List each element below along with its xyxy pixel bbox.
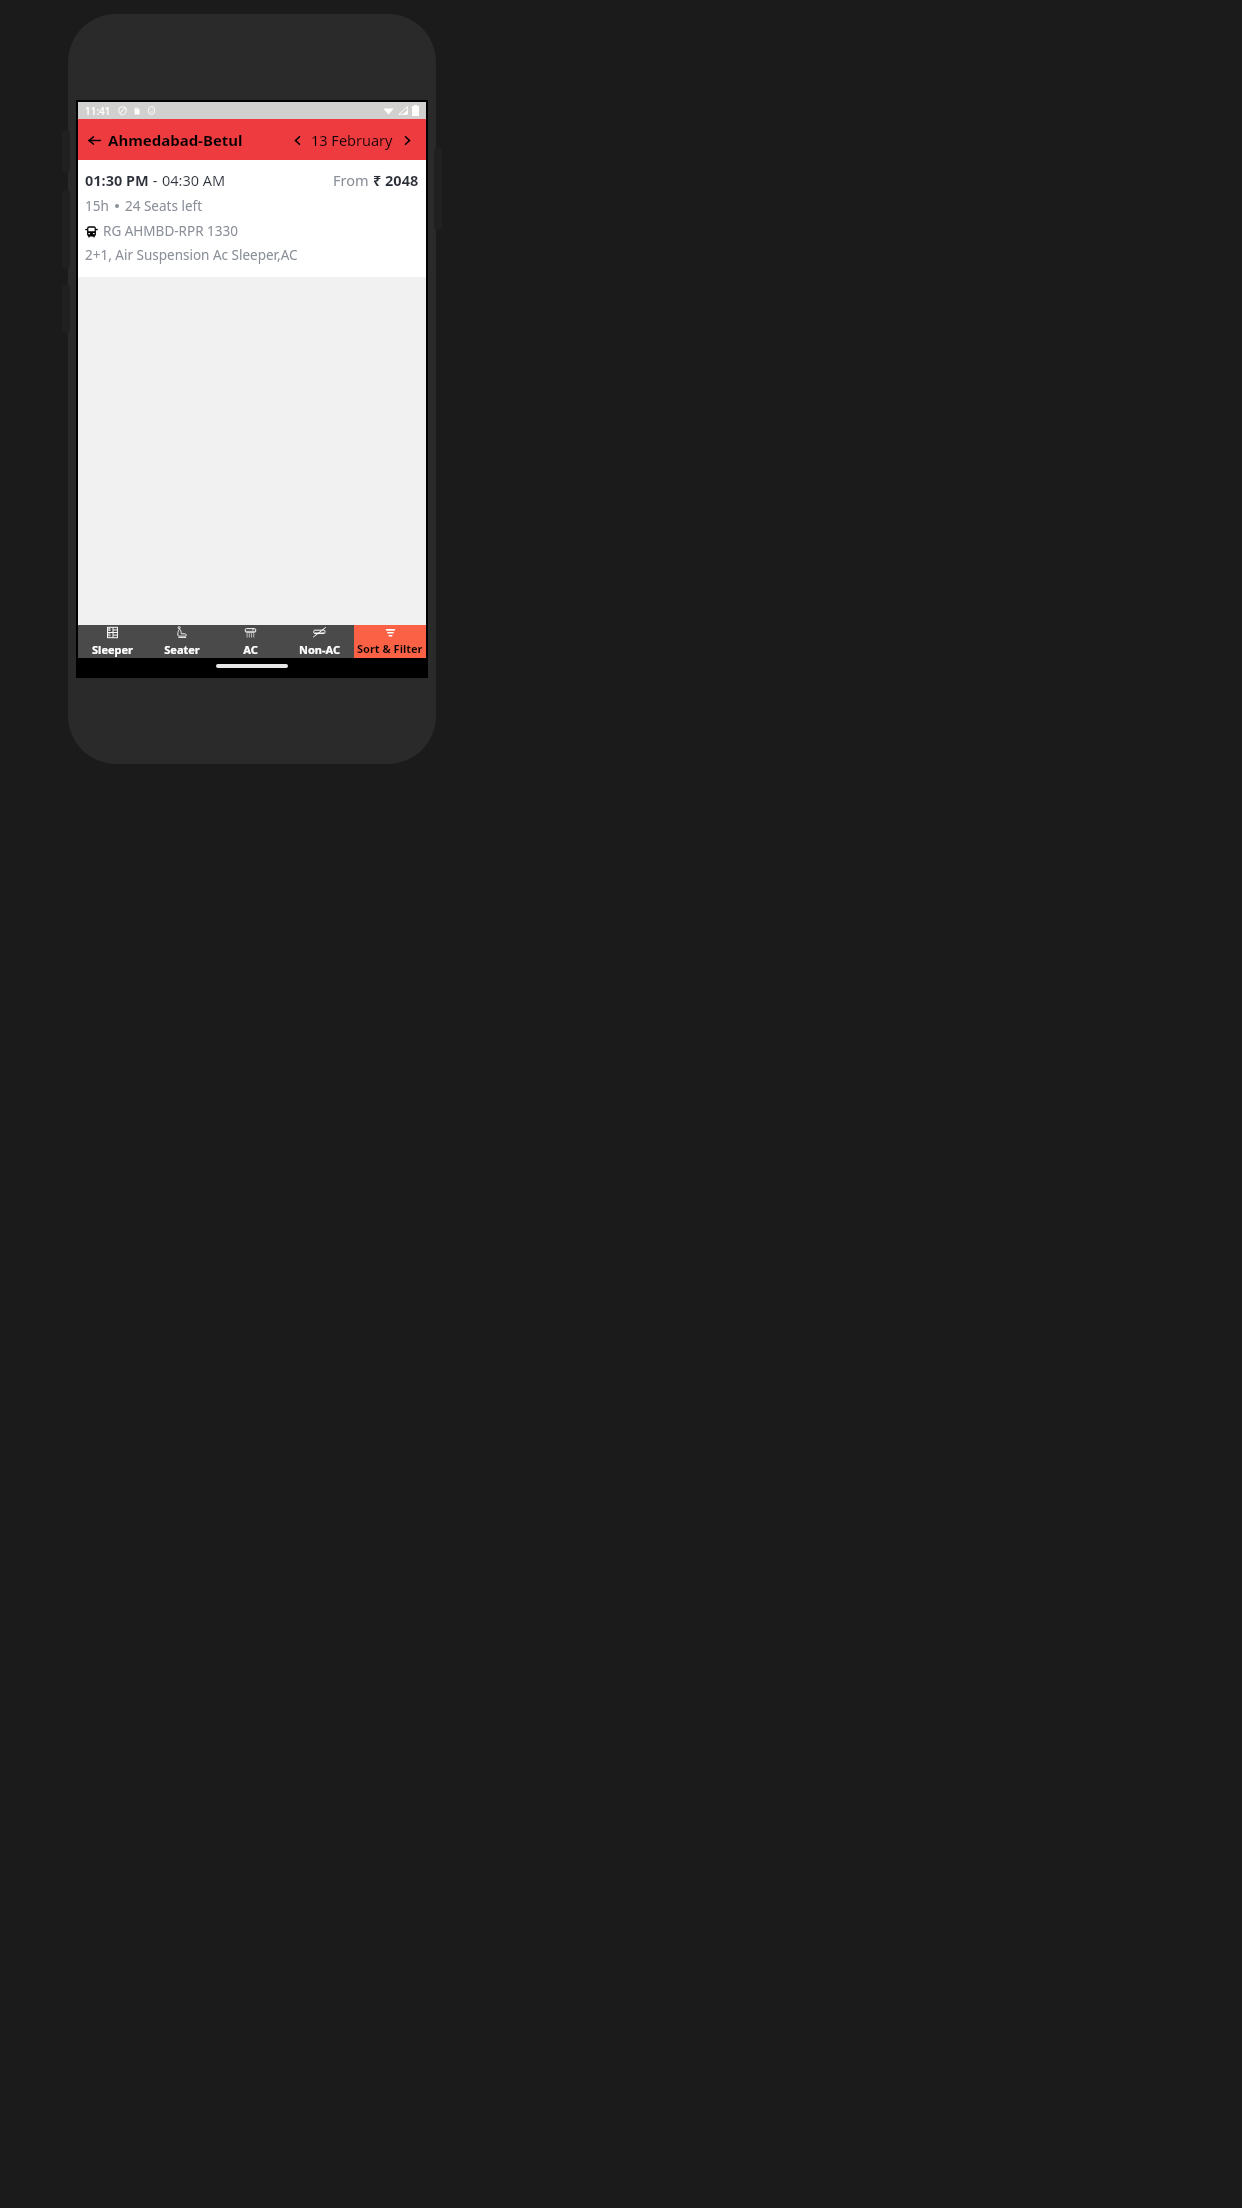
staticText: 04:30 AM bbox=[162, 170, 226, 190]
staticText: 24 Seats left bbox=[125, 197, 203, 215]
staticText: Non-AC bbox=[299, 642, 340, 657]
button[interactable]: Non-AC bbox=[285, 625, 354, 658]
staticText: RG AHMBD-RPR 1330 bbox=[103, 222, 238, 240]
other: Back bbox=[88, 134, 101, 147]
staticText: Sort & Filter bbox=[357, 641, 423, 656]
staticText: - bbox=[149, 170, 162, 190]
button[interactable]: Sleeper bbox=[78, 625, 147, 658]
staticText: 15h bbox=[85, 197, 109, 215]
staticText: Sleeper bbox=[92, 642, 133, 657]
button[interactable]: Sort & Filter bbox=[354, 625, 426, 658]
button[interactable]: Previous date bbox=[288, 131, 306, 149]
staticText: ₹ 2048 bbox=[373, 170, 419, 190]
button[interactable]: AC bbox=[216, 625, 285, 658]
staticText: AC bbox=[243, 642, 258, 657]
staticText: Seater bbox=[164, 642, 200, 657]
staticText: Ahmedabad-Betul bbox=[108, 130, 243, 150]
button[interactable]: Next date bbox=[398, 131, 416, 149]
staticText: 11:41 bbox=[85, 104, 111, 118]
staticText: 01:30 PM bbox=[85, 170, 149, 190]
button[interactable]: 01:30 PM bbox=[78, 160, 426, 277]
button[interactable]: Back bbox=[88, 126, 243, 154]
staticText: 13 February bbox=[311, 130, 393, 150]
button[interactable]: Seater bbox=[147, 625, 216, 658]
staticText: 2+1, Air Suspension Ac Sleeper,AC bbox=[85, 246, 298, 264]
staticText: From bbox=[333, 170, 373, 190]
